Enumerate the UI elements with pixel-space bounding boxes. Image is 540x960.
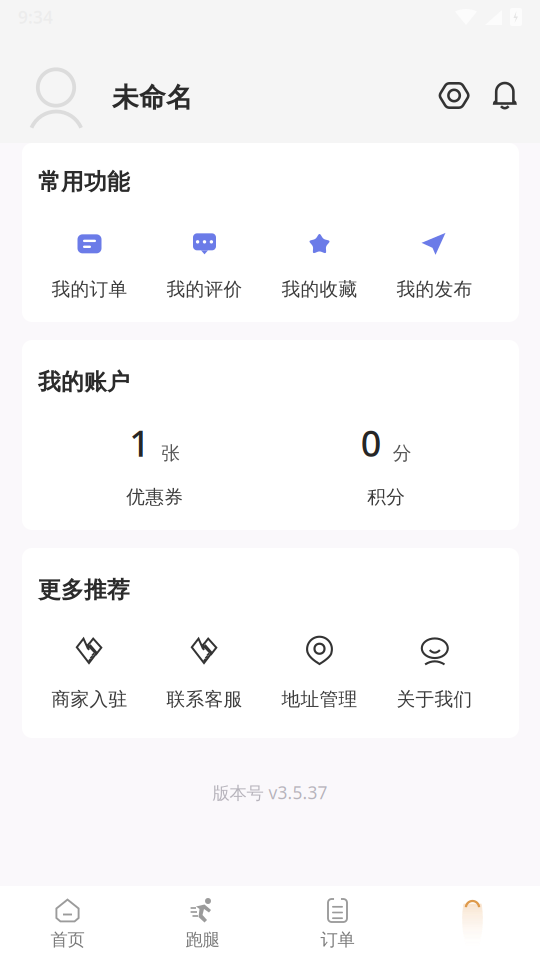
staticText: 我的账户 bbox=[38, 368, 130, 396]
button[interactable]: 1 bbox=[39, 419, 270, 508]
staticText: 关于我们 bbox=[396, 688, 472, 711]
staticText: 张 bbox=[161, 442, 180, 465]
button[interactable]: 跑腿 bbox=[135, 886, 270, 960]
staticText: 我的发布 bbox=[396, 278, 472, 301]
button[interactable]: 首页 bbox=[0, 886, 135, 960]
staticText: 地址管理 bbox=[281, 688, 357, 711]
staticText: 1 bbox=[129, 419, 150, 467]
staticText: 积分 bbox=[367, 486, 405, 508]
button[interactable]: 关于我们 bbox=[377, 637, 492, 711]
staticText: 订单 bbox=[320, 929, 354, 950]
staticText: 我的订单 bbox=[51, 278, 127, 301]
staticText: 未命名 bbox=[112, 81, 193, 114]
button[interactable]: 商家入驻 bbox=[32, 637, 147, 711]
staticText: 商家入驻 bbox=[51, 688, 127, 711]
staticText: 0 bbox=[361, 419, 382, 467]
staticText: 我的收藏 bbox=[281, 278, 357, 301]
button[interactable]: 我的 bbox=[405, 886, 540, 960]
staticText: 联系客服 bbox=[166, 688, 242, 711]
button[interactable]: 地址管理 bbox=[262, 637, 377, 711]
staticText: 分 bbox=[393, 442, 412, 465]
button[interactable]: 订单 bbox=[270, 886, 405, 960]
staticText: 优惠券 bbox=[126, 486, 183, 508]
staticText: 跑腿 bbox=[185, 929, 219, 950]
staticText: 版本号 v3.5.37 bbox=[212, 781, 327, 804]
button[interactable]: 我的收藏 bbox=[262, 230, 377, 301]
button[interactable]: 通知 bbox=[493, 67, 517, 110]
staticText: 9:34 bbox=[18, 5, 53, 28]
staticText: 首页 bbox=[50, 929, 84, 950]
button[interactable]: 我的订单 bbox=[32, 230, 147, 301]
button[interactable]: 我的评价 bbox=[147, 230, 262, 301]
button[interactable]: 我的发布 bbox=[377, 230, 492, 301]
staticText: 常用功能 bbox=[38, 168, 130, 196]
button[interactable]: 未命名 bbox=[29, 54, 193, 122]
staticText: 我的评价 bbox=[166, 278, 242, 301]
button[interactable]: 设置 bbox=[438, 66, 471, 110]
button[interactable]: 联系客服 bbox=[147, 637, 262, 711]
button[interactable]: 0 bbox=[270, 419, 502, 508]
staticText: 更多推荐 bbox=[38, 576, 130, 604]
